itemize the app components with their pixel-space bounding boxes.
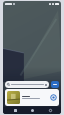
button[interactable]: Home (26, 107, 38, 114)
button[interactable]: Play (50, 94, 57, 101)
button[interactable] (5, 81, 49, 88)
button[interactable]: Capture (51, 81, 59, 88)
button[interactable]: Back (44, 107, 56, 114)
button[interactable]: Play (5, 89, 59, 106)
button[interactable]: Recents (9, 107, 21, 114)
